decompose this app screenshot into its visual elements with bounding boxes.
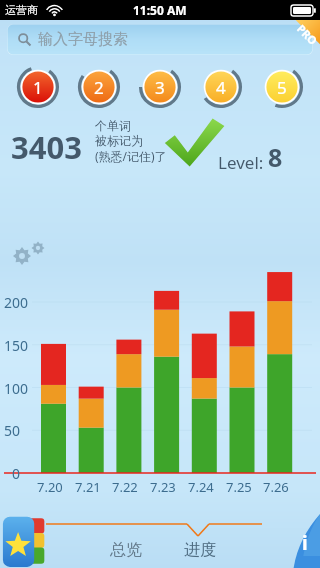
staticText: 4 [216, 76, 226, 99]
staticText: 1 [33, 76, 43, 99]
staticText: 输入字母搜索 [38, 30, 128, 49]
staticText: 5 [277, 76, 287, 99]
staticText: 7.22 [112, 478, 138, 496]
staticText: 7.20 [37, 478, 63, 496]
staticText: 个单词 [95, 118, 131, 133]
staticText: 150 [4, 336, 29, 355]
staticText: 50 [4, 421, 21, 440]
staticText: 3 [155, 76, 165, 99]
staticText: 运营商 [5, 3, 38, 17]
staticText: 8 [268, 140, 283, 174]
button[interactable]: Info [276, 514, 320, 568]
staticText: 总览 [110, 540, 142, 560]
button[interactable]: Settings [8, 238, 50, 266]
button[interactable]: 总览 [110, 540, 142, 560]
button[interactable]: Level 5 [261, 66, 303, 108]
staticText: PRO [294, 21, 320, 48]
staticText: 11:50 AM [133, 2, 187, 18]
button[interactable]: 进度 [184, 540, 216, 560]
button[interactable]: Level 4 [200, 66, 242, 108]
staticText: 7.23 [150, 478, 176, 496]
button[interactable]: Level 3 [139, 66, 181, 108]
button[interactable]: Level 1 [17, 66, 59, 108]
staticText: 7.21 [75, 478, 101, 496]
staticText: 2 [94, 76, 104, 99]
staticText: 0 [12, 464, 21, 483]
staticText: 3403 [11, 126, 82, 168]
button[interactable]: PRO [282, 20, 320, 58]
staticText: 被标记为 [95, 133, 143, 148]
staticText: 200 [4, 293, 29, 312]
staticText: 7.24 [188, 478, 214, 496]
staticText: 7.26 [263, 478, 289, 496]
button[interactable]: Dictionary [2, 514, 48, 568]
staticText: 进度 [184, 540, 216, 560]
staticText: Level: [218, 151, 268, 174]
staticText: i [302, 530, 308, 556]
staticText: 7.25 [226, 478, 252, 496]
button[interactable]: Level 2 [78, 66, 120, 108]
staticText: 100 [4, 379, 29, 398]
button[interactable]: 输入字母搜索 [7, 24, 313, 55]
staticText: (熟悉/记住)了 [95, 148, 167, 164]
